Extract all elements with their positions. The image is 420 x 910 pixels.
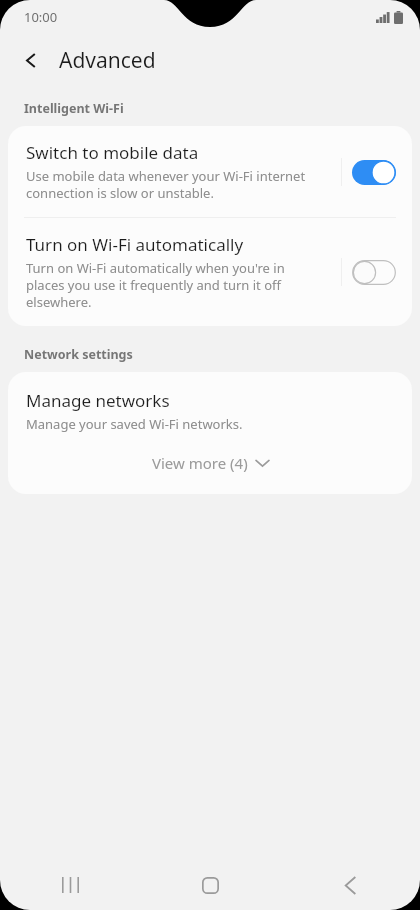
staticText: Intelligent Wi-Fi: [24, 100, 420, 117]
button[interactable]: On: [348, 152, 400, 192]
button[interactable]: Navigate up: [9, 38, 53, 82]
button[interactable]: Back: [280, 860, 420, 910]
staticText: Use mobile data whenever your Wi-Fi inte…: [26, 167, 306, 202]
button[interactable]: Off: [348, 252, 400, 292]
button[interactable]: Home: [140, 860, 280, 910]
staticText: 10:00: [24, 8, 58, 26]
staticText: Manage your saved Wi-Fi networks.: [26, 415, 243, 433]
staticText: Switch to mobile data: [26, 141, 199, 164]
button[interactable]: Switch to mobile data: [8, 126, 412, 217]
button[interactable]: Recents: [0, 860, 140, 910]
button[interactable]: View more (4): [8, 439, 412, 494]
button[interactable]: Manage networks: [8, 372, 412, 439]
staticText: Advanced: [59, 46, 156, 75]
staticText: Turn on Wi-Fi automatically when you're …: [26, 259, 285, 311]
button[interactable]: Turn on Wi-Fi automatically: [8, 218, 412, 326]
staticText: Network settings: [24, 346, 420, 363]
staticText: Manage networks: [26, 389, 170, 412]
staticText: View more (4): [152, 453, 248, 473]
staticText: Turn on Wi-Fi automatically: [26, 233, 244, 256]
